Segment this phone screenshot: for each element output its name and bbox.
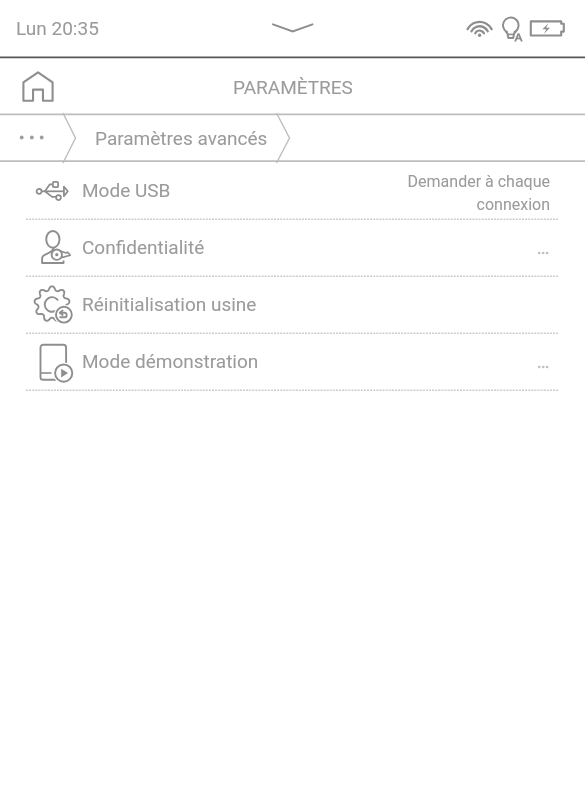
button[interactable]: Paramètres avancés (95, 127, 268, 149)
staticText: Paramètres avancés (95, 127, 268, 149)
button[interactable]: Mode USB (0, 162, 585, 219)
button[interactable]: Accueil (0, 58, 76, 114)
button[interactable]: Confidentialité (0, 219, 585, 276)
staticText: Réinitialisation usine (82, 293, 257, 315)
staticText: Mode USB (82, 179, 171, 201)
button[interactable]: Mode démonstration (0, 333, 585, 390)
button[interactable]: Réinitialisation usine (0, 276, 585, 333)
staticText: PARAMÈTRES (233, 76, 353, 98)
staticText: Lun 20:35 (16, 17, 99, 39)
staticText: Demander à chaque connexion (407, 172, 550, 214)
button[interactable]: Plus (0, 114, 63, 162)
staticText: Mode démonstration (82, 350, 259, 372)
staticText: Confidentialité (82, 236, 205, 258)
